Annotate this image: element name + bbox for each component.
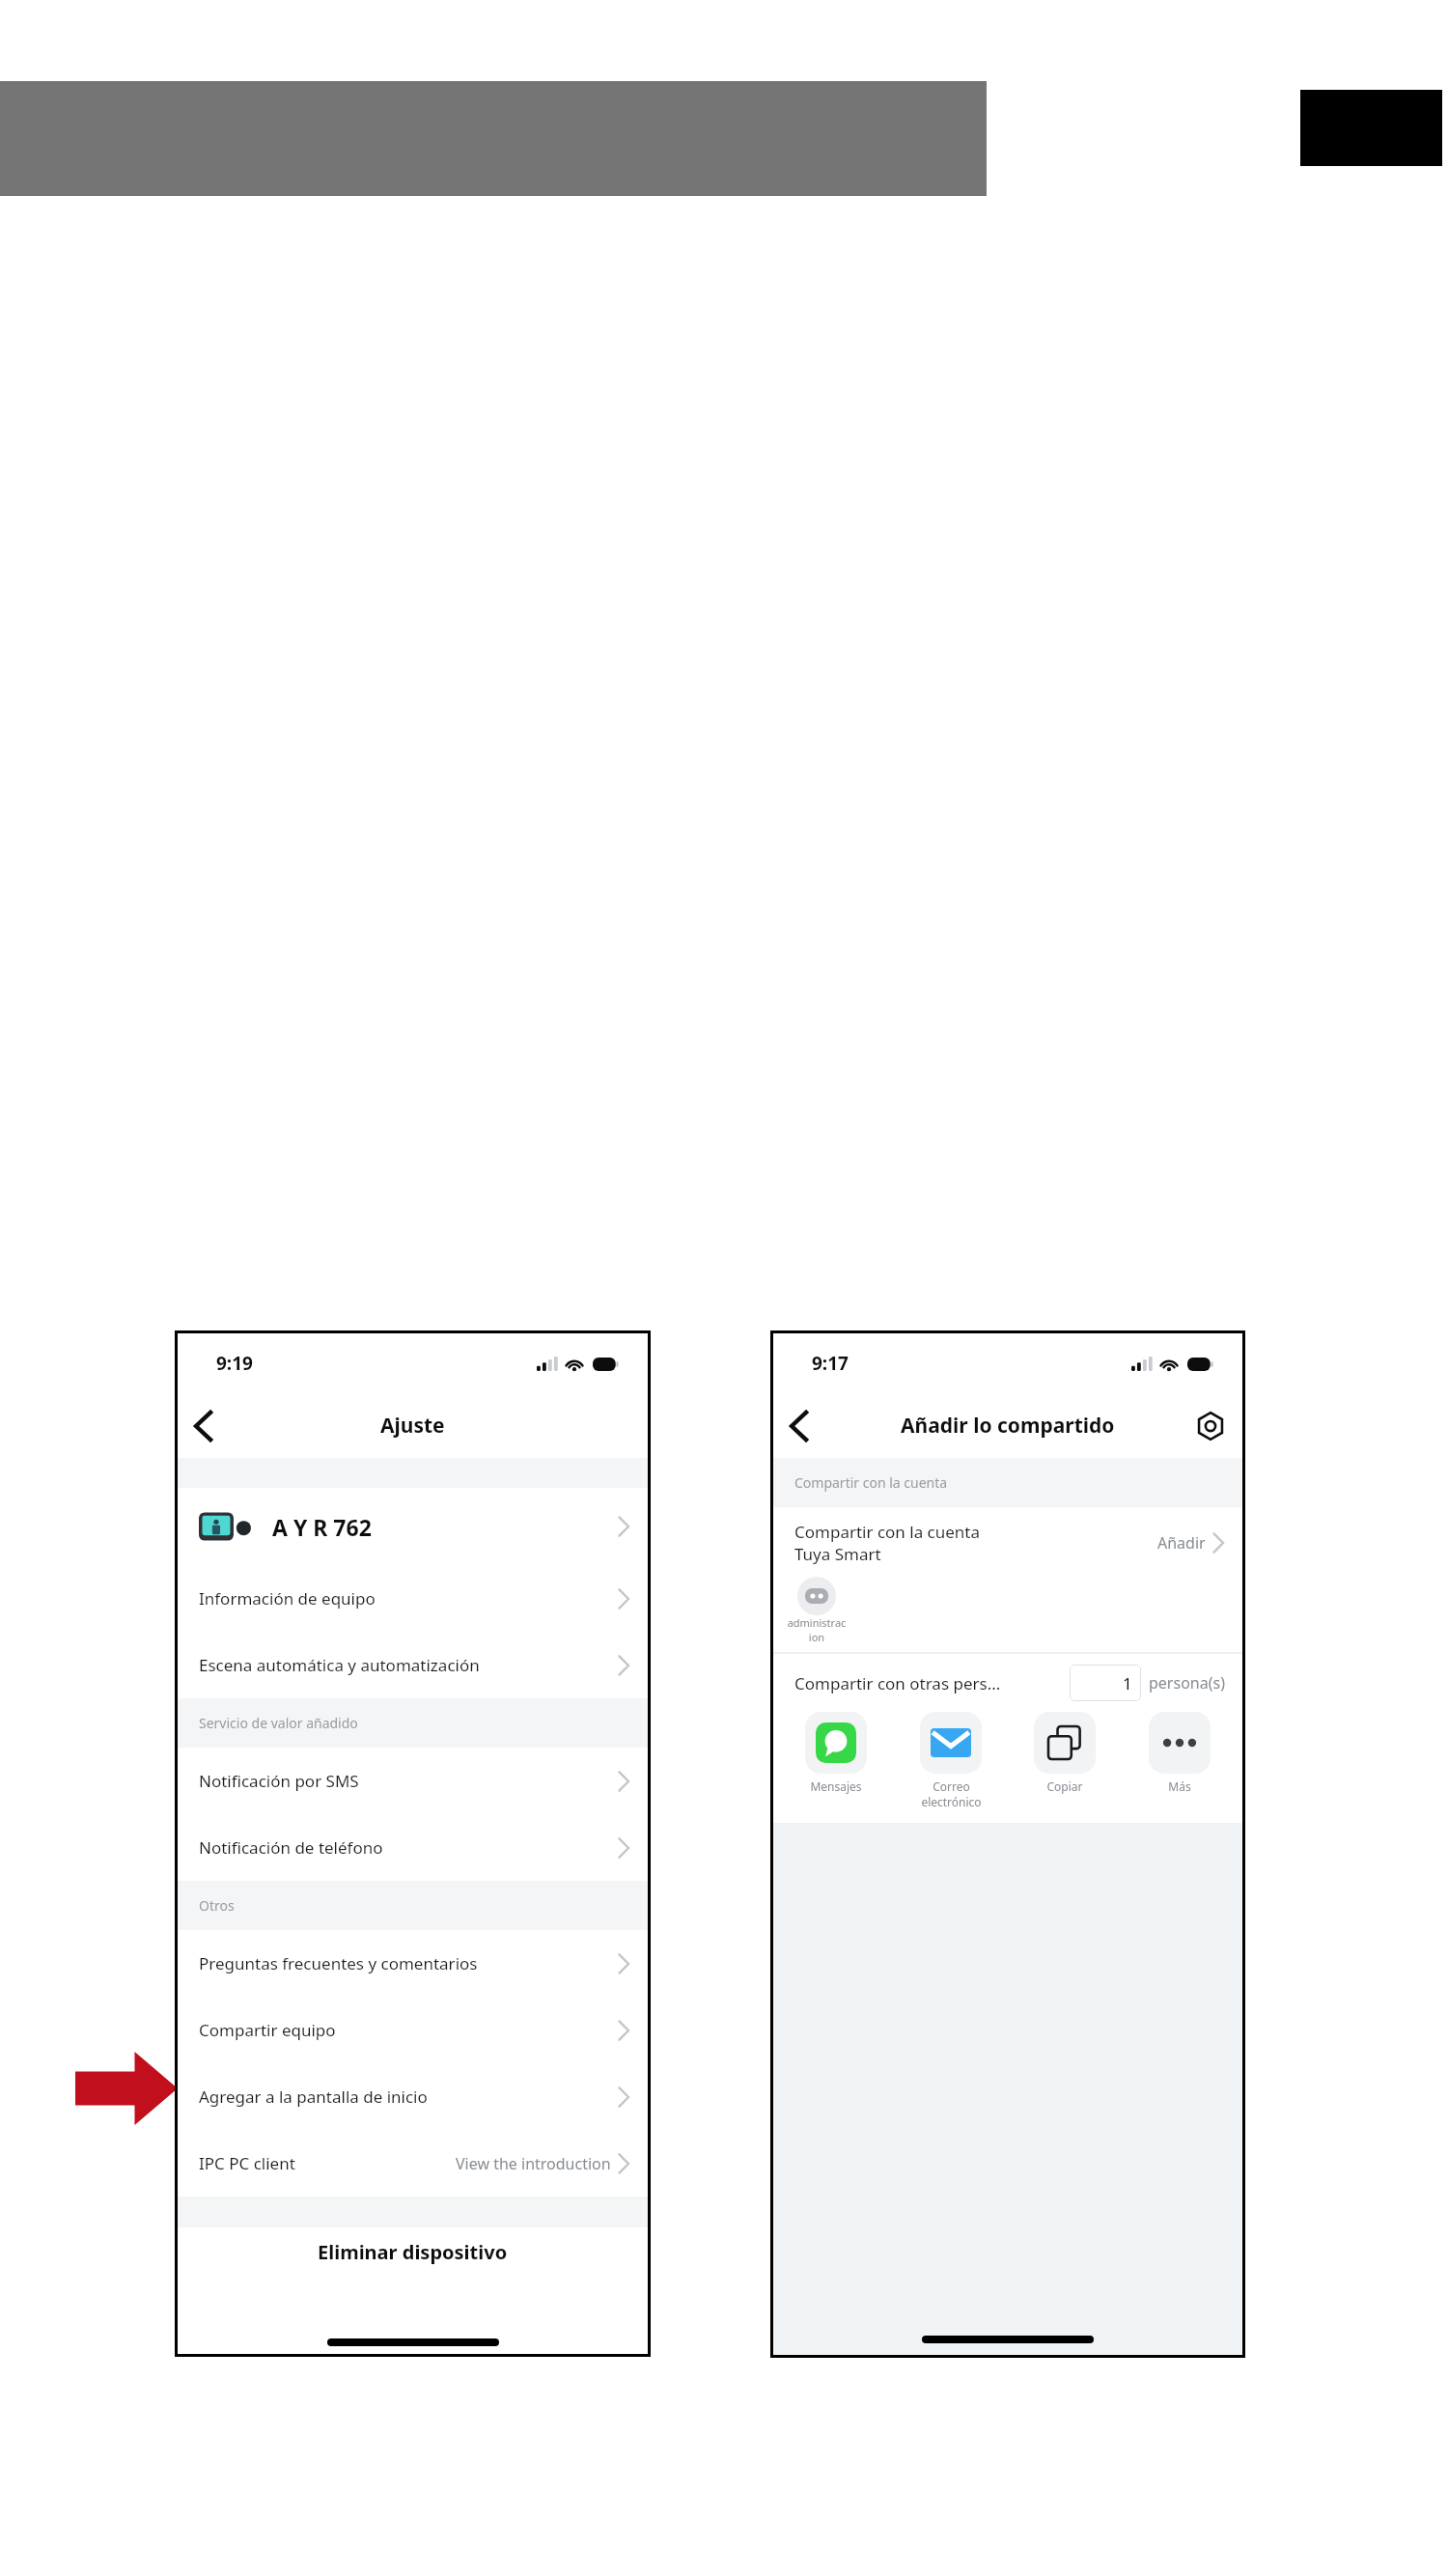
button[interactable]: Preguntas frecuentes y comentarios — [178, 1930, 648, 1997]
staticText: View the introduction — [456, 2153, 611, 2174]
staticText: Información de equipo — [199, 1587, 617, 1610]
staticText: Mensajes — [810, 1778, 862, 1794]
button[interactable]: Escena automática y automatización — [178, 1632, 648, 1698]
staticText: 1 — [1123, 1672, 1132, 1694]
button[interactable]: Back — [773, 1400, 825, 1452]
button[interactable]: Copiar — [1027, 1712, 1102, 1794]
button[interactable]: IPC PC client — [178, 2130, 648, 2197]
staticText: Tuya Smart — [794, 1543, 881, 1565]
button[interactable]: Back — [178, 1400, 230, 1452]
button[interactable]: Eliminar dispositivo — [318, 2239, 508, 2265]
staticText: Ajuste — [380, 1412, 445, 1440]
staticText: 9:19 — [216, 1351, 253, 1376]
staticText: Copiar — [1046, 1778, 1083, 1794]
staticText: persona(s) — [1149, 1672, 1225, 1694]
button[interactable]: A Y R 762 — [178, 1488, 648, 1565]
staticText: 9:17 — [812, 1351, 849, 1376]
button[interactable]: Compartir con la cuenta — [773, 1507, 1242, 1575]
staticText: Agregar a la pantalla de inicio — [199, 2086, 617, 2108]
button[interactable]: Compartir equipo — [178, 1997, 648, 2063]
staticText: A Y R 762 — [272, 1512, 617, 1542]
staticText: Escena automática y automatización — [199, 1654, 617, 1676]
staticText: Más — [1168, 1778, 1191, 1794]
staticText: administracion — [787, 1615, 847, 1644]
staticText: Añadir lo compartido — [901, 1412, 1115, 1440]
button[interactable]: Settings — [1188, 1404, 1233, 1448]
staticText: Notificación por SMS — [199, 1770, 617, 1792]
button[interactable]: Mensajes — [798, 1712, 874, 1794]
button[interactable]: 1 — [1070, 1665, 1141, 1701]
staticText: Servicio de valor añadido — [199, 1714, 358, 1732]
button[interactable]: Más — [1142, 1712, 1217, 1794]
button[interactable]: Correo electrónico — [913, 1712, 989, 1809]
button[interactable]: Notificación por SMS — [178, 1748, 648, 1814]
button[interactable]: Información de equipo — [178, 1565, 648, 1632]
staticText: Compartir con otras pers... — [794, 1672, 1070, 1694]
button[interactable]: Agregar a la pantalla de inicio — [178, 2063, 648, 2130]
staticText: Preguntas frecuentes y comentarios — [199, 1952, 617, 1974]
button[interactable]: Notificación de teléfono — [178, 1814, 648, 1881]
staticText: Compartir con la cuenta — [794, 1473, 948, 1492]
staticText: IPC PC client — [199, 2152, 456, 2174]
staticText: Otros — [199, 1896, 235, 1915]
staticText: Compartir con la cuenta — [794, 1521, 981, 1543]
staticText: Correo electrónico — [921, 1778, 982, 1809]
staticText: Compartir equipo — [199, 2019, 617, 2041]
staticText: Añadir — [1157, 1532, 1206, 1554]
staticText: Notificación de teléfono — [199, 1836, 617, 1859]
